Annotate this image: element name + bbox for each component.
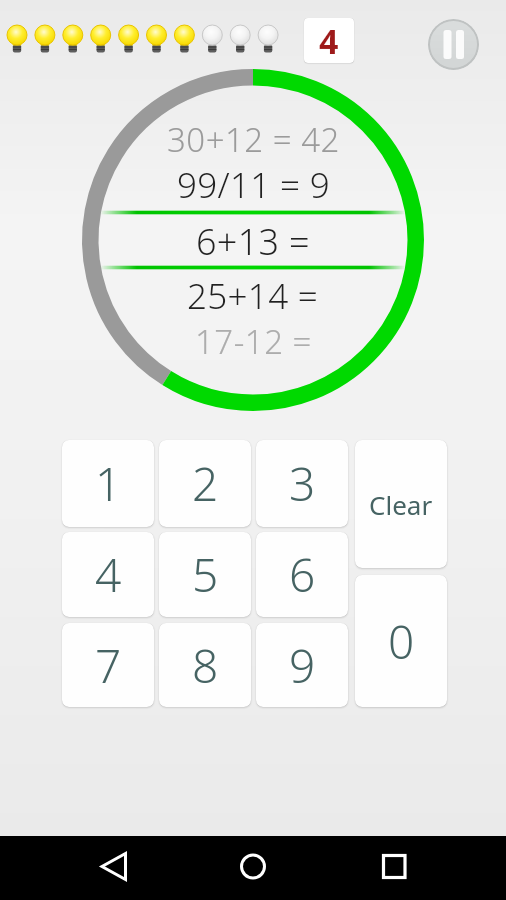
button[interactable]: 9 [256, 623, 348, 707]
staticText: 3 [289, 452, 316, 515]
button[interactable]: 7 [62, 623, 154, 707]
button[interactable] [428, 19, 479, 70]
staticText: Clear [369, 487, 433, 522]
button[interactable]: 3 [256, 440, 348, 527]
staticText: 30+12 = 42 [167, 117, 340, 162]
button[interactable]: 1 [62, 440, 154, 527]
staticText: 4 [319, 18, 339, 63]
staticText: 17-12 = [195, 319, 312, 364]
staticText: 8 [192, 634, 219, 697]
staticText: 7 [95, 634, 122, 697]
button[interactable]: 2 [159, 440, 251, 527]
staticText: 0 [388, 610, 415, 673]
button[interactable]: 8 [159, 623, 251, 707]
staticText: 99/11 = 9 [177, 161, 330, 209]
button[interactable]: 6 [256, 532, 348, 617]
button[interactable]: 4 [62, 532, 154, 617]
button[interactable] [364, 838, 424, 898]
button[interactable] [85, 838, 145, 898]
staticText: 25+14 = [187, 272, 319, 320]
button[interactable] [223, 838, 283, 898]
button[interactable]: 5 [159, 532, 251, 617]
staticText: 6 [289, 543, 316, 606]
button[interactable]: Clear [355, 440, 447, 568]
staticText: 2 [192, 452, 219, 515]
staticText: 6+13 = [196, 217, 310, 266]
staticText: 5 [192, 543, 219, 606]
staticText: 1 [95, 452, 122, 515]
staticText: 9 [289, 634, 316, 697]
button[interactable]: 0 [355, 575, 447, 707]
staticText: 4 [95, 543, 122, 606]
